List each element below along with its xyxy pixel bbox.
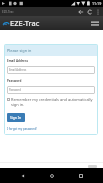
button[interactable]: Back <box>76 7 85 16</box>
staticText: Remember my credentials and automaticall… <box>11 97 93 107</box>
button[interactable]: Recents <box>74 169 87 182</box>
button[interactable]: Menu <box>89 18 100 29</box>
button[interactable]: More options <box>94 8 102 16</box>
button[interactable]: I forgot my password! <box>7 127 37 131</box>
button[interactable]: Email Address <box>7 66 95 74</box>
staticText: Password <box>7 79 22 83</box>
staticText: Please sign in <box>7 48 32 53</box>
button[interactable]: Refresh <box>85 7 94 16</box>
staticText: 11:19 <box>92 1 102 6</box>
button[interactable]: Home <box>45 169 58 182</box>
staticText: EZE-Trac <box>10 18 40 28</box>
staticText: Sign In <box>10 115 22 120</box>
button[interactable]: Password <box>7 86 95 94</box>
button[interactable]: Sign In <box>7 113 25 122</box>
button[interactable]: Scroll <box>88 165 97 168</box>
button[interactable]: Remember my credentials and automaticall… <box>7 97 95 107</box>
staticText: Email Address <box>7 59 28 63</box>
button[interactable]: Back <box>16 169 29 182</box>
staticText: Email Address <box>9 68 27 72</box>
staticText: Password <box>9 88 21 92</box>
staticText: EZE-Trac <box>2 10 14 14</box>
